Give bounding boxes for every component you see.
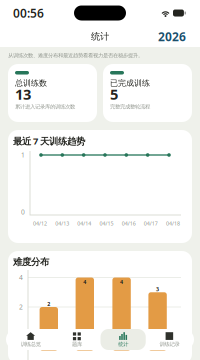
staticText: 4	[120, 278, 123, 286]
button[interactable]: 2026	[158, 28, 186, 44]
staticText: 04/17	[144, 220, 158, 227]
staticText: 1	[21, 151, 25, 159]
staticText: 13	[15, 84, 31, 104]
staticText: 难度分布	[13, 256, 49, 268]
staticText: 统计	[118, 341, 128, 348]
staticText: 5	[110, 84, 118, 104]
staticText: 4	[19, 273, 23, 282]
staticText: 04/12	[33, 220, 47, 227]
button[interactable]: 训练记录	[147, 329, 192, 350]
staticText: 完整完成整轮流程	[110, 103, 150, 110]
staticText: 最近 7 天训练趋势	[13, 135, 85, 147]
staticText: 04/18	[166, 220, 180, 227]
staticText: 04/15	[99, 220, 113, 227]
staticText: 累计进入记录库的训练次数	[15, 103, 75, 110]
staticText: 00:56	[13, 5, 44, 21]
staticText: 训练总览	[21, 341, 41, 348]
button[interactable]: 题库	[54, 329, 99, 350]
button[interactable]: 统计	[100, 329, 146, 350]
staticText: 2	[47, 300, 50, 307]
staticText: 0	[21, 208, 25, 216]
staticText: 从训练次数、难度分布和最近趋势看看视力是否在稳步提升。	[8, 52, 143, 59]
staticText: 04/14	[77, 220, 91, 227]
staticText: 2026	[158, 28, 186, 44]
staticText: 04/13	[55, 220, 69, 227]
staticText: 3	[156, 286, 159, 293]
staticText: 已完成训练	[110, 78, 150, 88]
staticText: 4	[83, 278, 86, 286]
staticText: 2	[19, 303, 23, 311]
staticText: 04/16	[122, 220, 136, 227]
staticText: 训练记录	[159, 341, 179, 348]
staticText: 题库	[72, 341, 82, 348]
staticText: 统计	[91, 31, 109, 42]
button[interactable]: 训练总览	[8, 329, 53, 350]
staticText: 总训练数	[15, 78, 47, 88]
